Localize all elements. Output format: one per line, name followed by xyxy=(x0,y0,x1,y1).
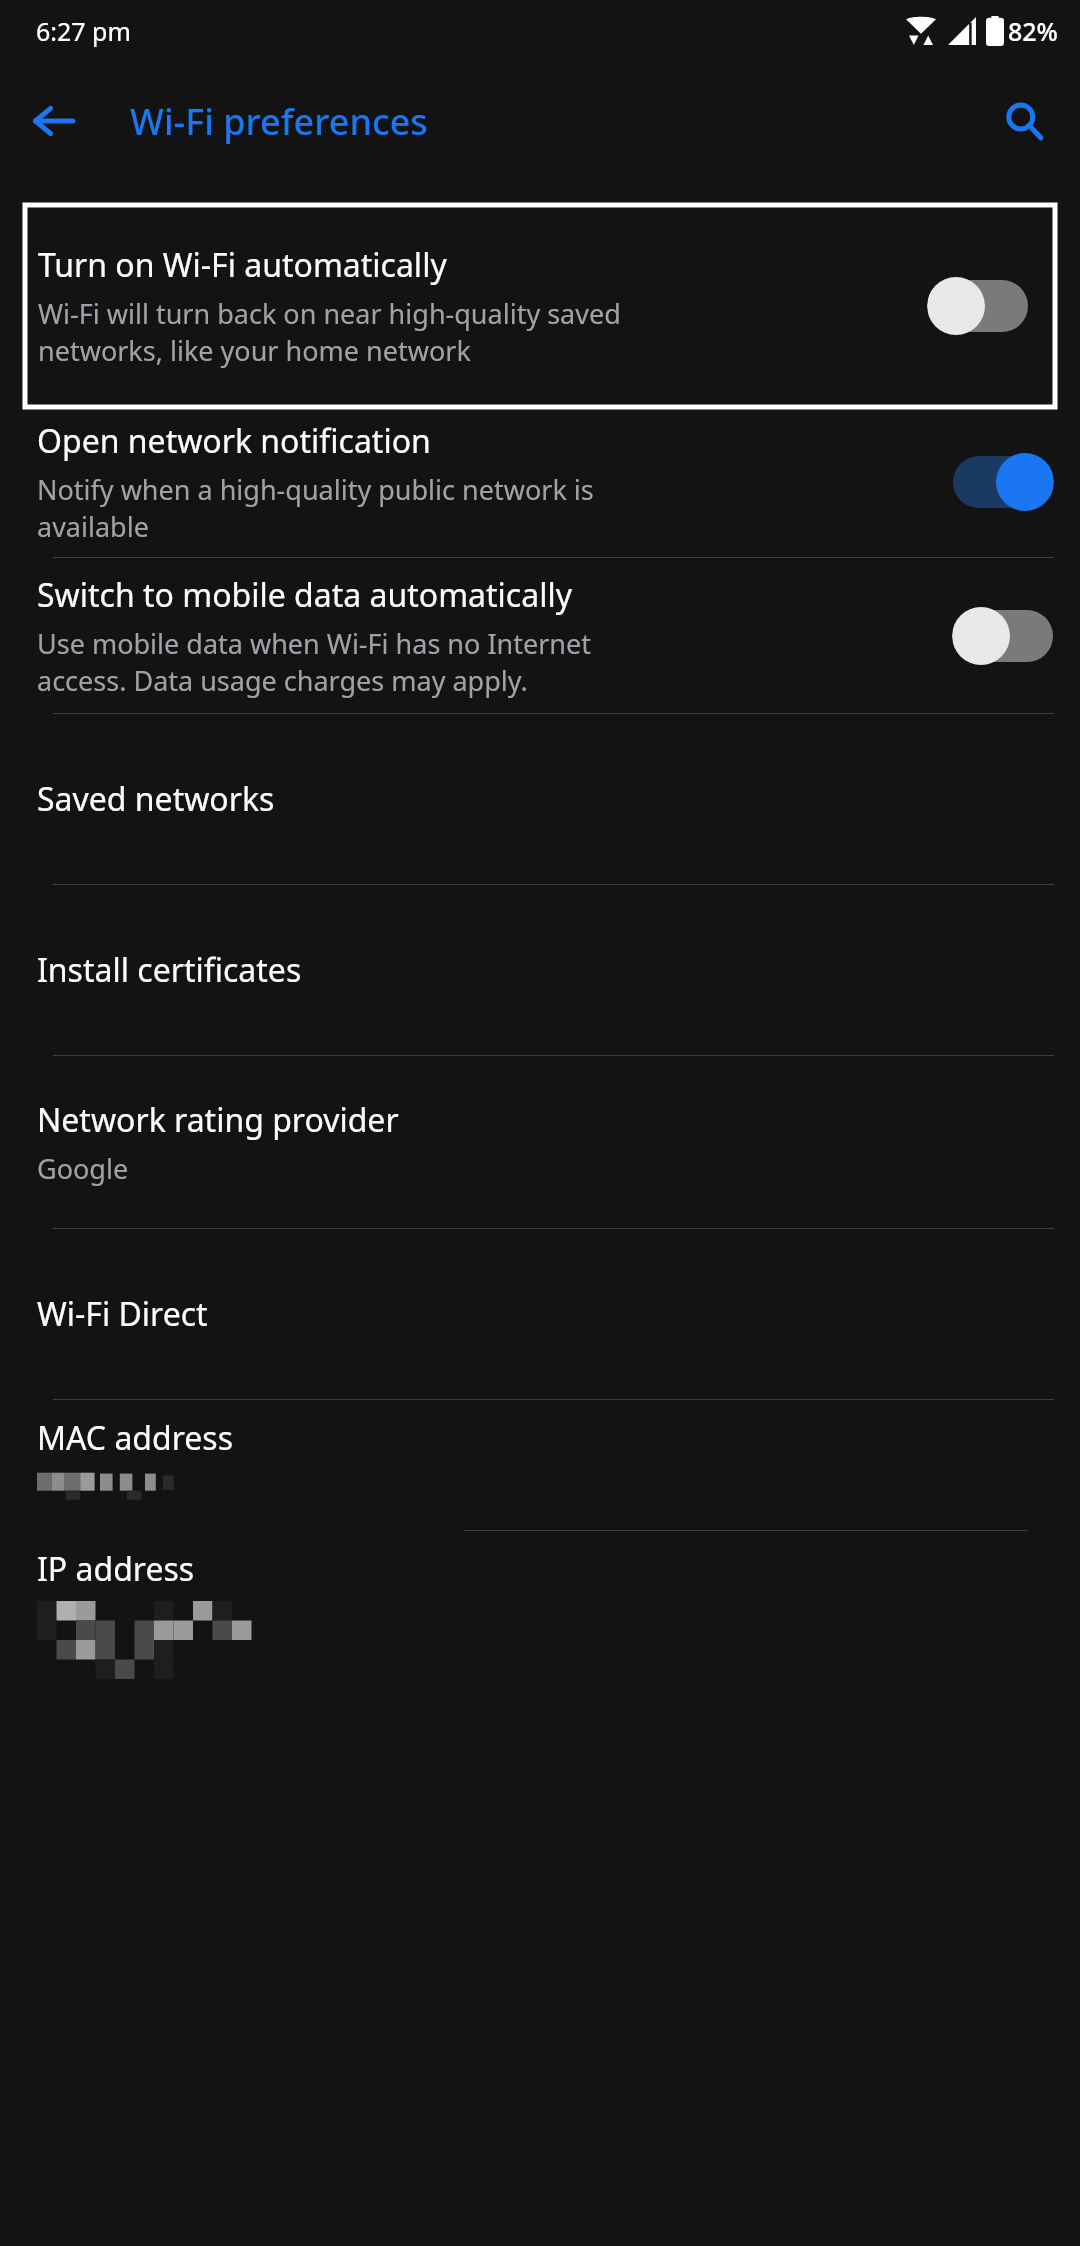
staticText: Notify when a high-quality public networ… xyxy=(37,471,594,545)
staticText: 6:27 pm xyxy=(36,14,131,48)
staticText: IP address xyxy=(37,1547,195,1591)
button[interactable]: Install certificates xyxy=(0,885,1080,1055)
staticText: Open network notification xyxy=(37,419,431,463)
staticText: Switch to mobile data automatically xyxy=(37,573,572,617)
staticText: Wi-Fi preferences xyxy=(130,97,428,146)
button[interactable]: Switch to mobile data automatically xyxy=(0,558,1080,713)
button[interactable]: Wi-Fi Direct xyxy=(0,1229,1080,1399)
staticText: Turn on Wi-Fi automatically xyxy=(38,243,447,287)
button[interactable]: Network rating provider xyxy=(0,1056,1080,1228)
staticText: Wi-Fi will turn back on near high-qualit… xyxy=(38,295,621,369)
button[interactable]: Turn on Wi-Fi automatically xyxy=(25,205,1055,407)
button[interactable]: Open network notification xyxy=(0,407,1080,557)
button[interactable]: Back xyxy=(14,81,94,161)
button[interactable]: Toggle on xyxy=(952,440,1054,524)
staticText: Install certificates xyxy=(37,948,302,992)
button[interactable]: Saved networks xyxy=(0,714,1080,884)
button[interactable]: IP address xyxy=(0,1531,1080,1691)
button[interactable]: MAC address xyxy=(0,1400,1080,1530)
staticText: Use mobile data when Wi-Fi has no Intern… xyxy=(37,625,592,699)
button[interactable]: Toggle off xyxy=(952,594,1054,678)
staticText: Saved networks xyxy=(37,777,275,821)
button[interactable]: Toggle off xyxy=(927,264,1029,348)
staticText: MAC address xyxy=(37,1416,233,1460)
button[interactable]: Search xyxy=(984,81,1064,161)
staticText: Google xyxy=(37,1150,129,1187)
staticText: Wi-Fi Direct xyxy=(37,1292,208,1336)
staticText: Network rating provider xyxy=(37,1098,399,1142)
staticText: 82% xyxy=(1008,14,1058,48)
